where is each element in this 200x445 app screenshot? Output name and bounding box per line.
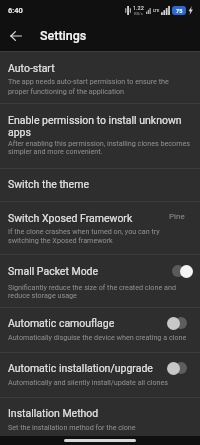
staticText: switching the Xposed framework bbox=[8, 236, 113, 244]
staticText: Switch Xposed Framework bbox=[8, 212, 133, 224]
button[interactable]: Toggle on bbox=[167, 264, 193, 278]
staticText: After enabling this permission, installi… bbox=[8, 139, 191, 147]
staticText: apps bbox=[8, 126, 31, 138]
staticText: Installation Method bbox=[8, 407, 99, 419]
button[interactable]: Small Packet Mode bbox=[0, 255, 200, 307]
staticText: 1.22 bbox=[133, 5, 144, 11]
staticText: Auto-start bbox=[8, 62, 55, 74]
staticText: Significantly reduce the size of the cre… bbox=[8, 283, 176, 291]
staticText: Switch the theme bbox=[8, 178, 89, 190]
button[interactable]: Back bbox=[0, 20, 31, 51]
staticText: KB/s bbox=[134, 11, 143, 16]
button[interactable]: Toggle off bbox=[166, 361, 192, 375]
button[interactable]: Enable permission to install unknown bbox=[0, 104, 200, 168]
staticText: Automatically disguise the device when c… bbox=[8, 333, 187, 341]
button[interactable]: Switch Xposed Framework bbox=[0, 202, 200, 254]
staticText: 6:40 bbox=[8, 6, 23, 15]
staticText: LTE bbox=[153, 8, 160, 13]
staticText: Settings bbox=[40, 28, 87, 43]
staticText: 75 bbox=[176, 8, 183, 14]
staticText: Pine bbox=[169, 212, 185, 221]
button[interactable]: Switch the theme bbox=[0, 169, 200, 201]
staticText: Automatically and silently install/updat… bbox=[8, 378, 168, 386]
button[interactable]: Auto-start bbox=[0, 52, 200, 103]
staticText: Automatic installation/upgrade bbox=[8, 362, 153, 374]
staticText: proper functioning of the application bbox=[8, 87, 125, 95]
staticText: The app needs auto-start permission to e… bbox=[8, 77, 169, 85]
staticText: Set the installation method for the clon… bbox=[8, 423, 136, 431]
button[interactable]: Installation Method bbox=[0, 398, 200, 442]
button[interactable]: Automatic camouflage bbox=[0, 308, 200, 352]
staticText: Automatic camouflage bbox=[8, 317, 115, 329]
button[interactable]: Toggle off bbox=[166, 316, 192, 330]
staticText: If the clone crashes when turned on, you… bbox=[8, 227, 160, 235]
staticText: simpler and more convenient. bbox=[8, 147, 103, 155]
staticText: Enable permission to install unknown bbox=[8, 114, 182, 126]
staticText: reduce storage usage bbox=[8, 291, 77, 299]
button[interactable]: Automatic installation/upgrade bbox=[0, 353, 200, 397]
staticText: Small Packet Mode bbox=[8, 265, 99, 277]
